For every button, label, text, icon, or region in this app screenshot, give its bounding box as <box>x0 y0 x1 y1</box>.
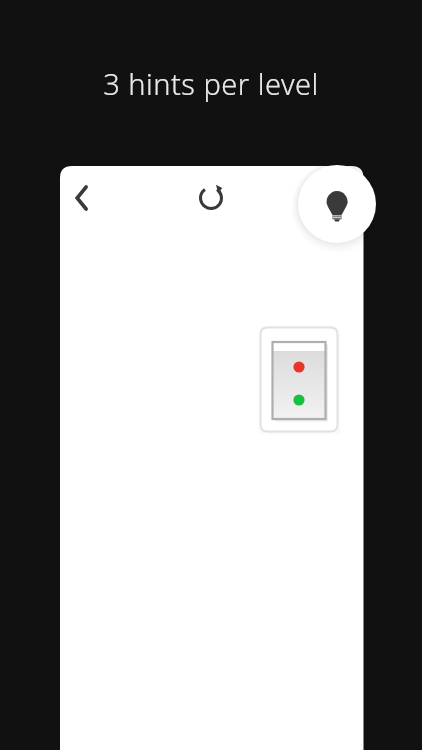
button[interactable]: Hint <box>296 163 378 245</box>
button[interactable]: Back <box>62 178 102 218</box>
button[interactable]: Restart level <box>191 178 231 218</box>
staticText: 3 hints per level <box>0 64 422 750</box>
button[interactable]: Light switch <box>259 326 339 433</box>
